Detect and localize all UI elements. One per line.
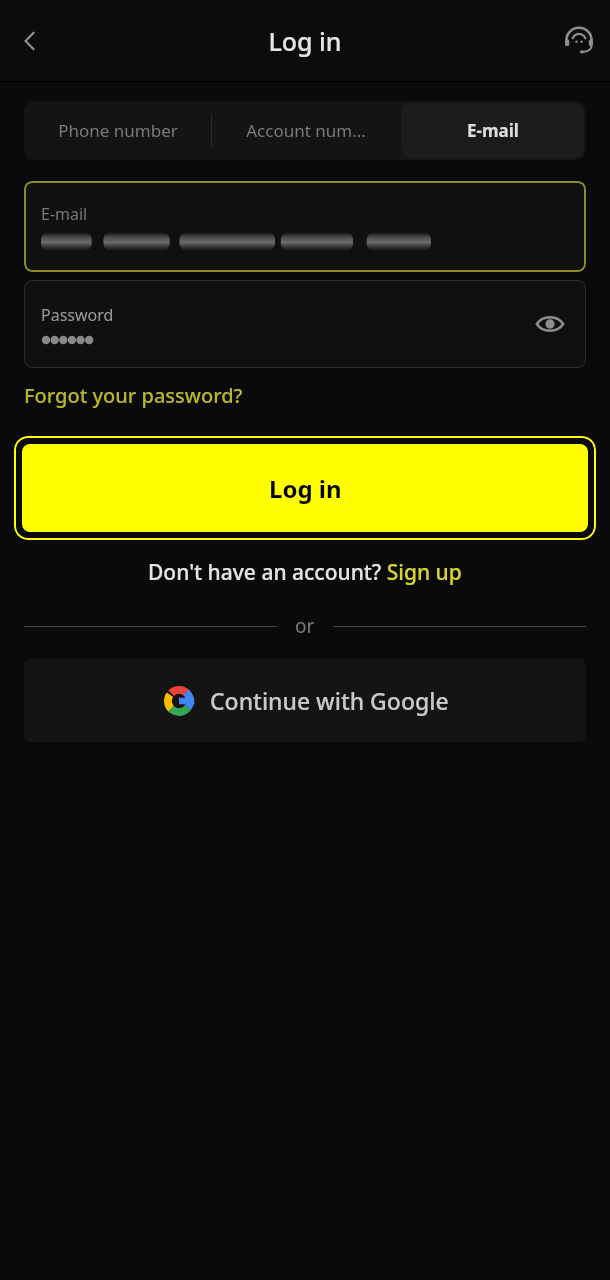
staticText: Account num... — [246, 119, 366, 142]
button[interactable]: Password — [24, 280, 586, 368]
button[interactable]: Back — [6, 17, 54, 65]
staticText: Continue with Google — [210, 685, 449, 716]
button[interactable]: Don't have an account? Sign up — [142, 554, 468, 591]
staticText: Phone number — [58, 119, 178, 142]
staticText: Log in — [269, 472, 342, 505]
staticText: Log in — [268, 24, 342, 58]
button[interactable]: E-mail — [24, 181, 586, 272]
staticText: Password — [41, 304, 114, 326]
staticText: Forgot your password? — [24, 382, 243, 409]
staticText: E-mail — [467, 119, 519, 142]
button[interactable]: Forgot your password? — [24, 378, 243, 413]
button[interactable]: E-mail — [401, 103, 584, 158]
button[interactable]: Phone number — [24, 101, 211, 160]
button[interactable]: Show password — [526, 300, 574, 348]
button[interactable]: Support — [555, 17, 603, 65]
button[interactable]: Log in — [22, 444, 588, 532]
staticText: E-mail — [41, 203, 88, 225]
staticText: Don't have an account? Sign up — [148, 558, 462, 587]
button[interactable]: Account num... — [212, 101, 399, 160]
staticText: or — [295, 613, 315, 639]
button[interactable]: Continue with Google — [24, 659, 586, 742]
